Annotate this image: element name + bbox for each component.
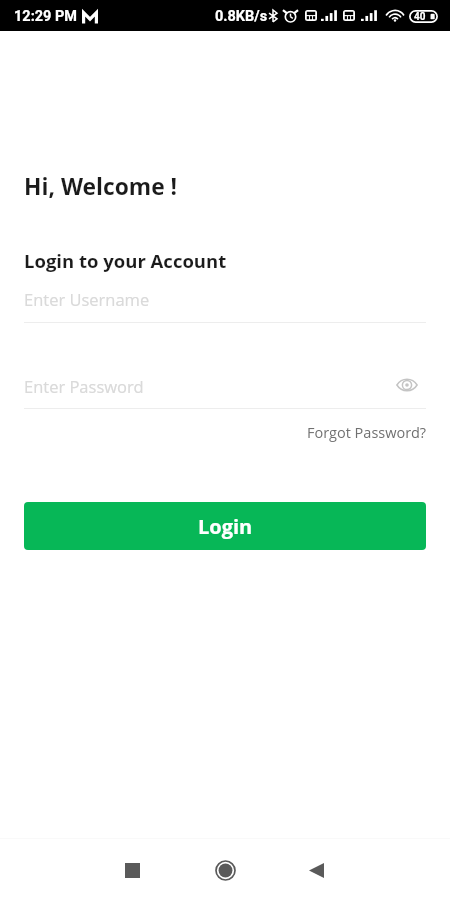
staticText: Enter Username (24, 288, 150, 310)
button[interactable]: Show password (395, 373, 419, 397)
button[interactable]: Back (291, 845, 341, 895)
staticText: Enter Password (24, 375, 144, 397)
button[interactable]: Login (24, 502, 426, 550)
staticText: 0.8KB/s (215, 8, 268, 25)
staticText: Forgot Password? (306, 423, 426, 443)
staticText: Hi, Welcome ! (24, 171, 178, 202)
button[interactable]: Forgot Password? (24, 423, 426, 443)
staticText: 40 (414, 11, 426, 23)
staticText: 12:29 PM (14, 8, 78, 25)
button[interactable]: Recent apps (107, 845, 157, 895)
staticText: Login to your Account (24, 248, 227, 273)
staticText: Login (198, 513, 253, 540)
button[interactable]: Home (200, 845, 250, 895)
